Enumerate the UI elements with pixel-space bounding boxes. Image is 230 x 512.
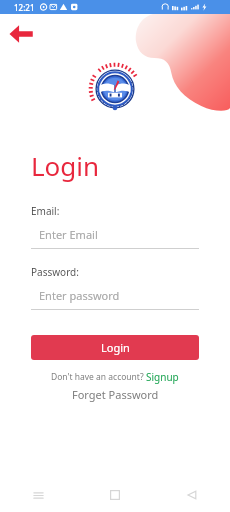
staticText: Enter password	[39, 288, 120, 303]
button[interactable]: Enter Email	[31, 227, 199, 249]
staticText: Signup	[146, 370, 179, 384]
staticText: Email:	[31, 204, 60, 218]
button[interactable]: Login	[31, 335, 199, 360]
staticText: Don't have an account?	[51, 371, 146, 383]
button[interactable]: Recents	[0, 478, 76, 512]
button[interactable]: Back	[153, 478, 230, 512]
button[interactable]: Forget Password	[31, 387, 199, 402]
staticText: Login	[101, 340, 130, 355]
staticText: 12:21	[14, 2, 35, 13]
button[interactable]: Enter password	[31, 288, 199, 310]
button[interactable]: Signup	[146, 370, 179, 384]
staticText: Password:	[31, 265, 79, 279]
button[interactable]: Back	[4, 20, 38, 48]
staticText: Login	[31, 148, 100, 183]
button[interactable]: Home	[76, 478, 153, 512]
staticText: Enter Email	[39, 227, 98, 242]
staticText: Forget Password	[72, 387, 159, 402]
